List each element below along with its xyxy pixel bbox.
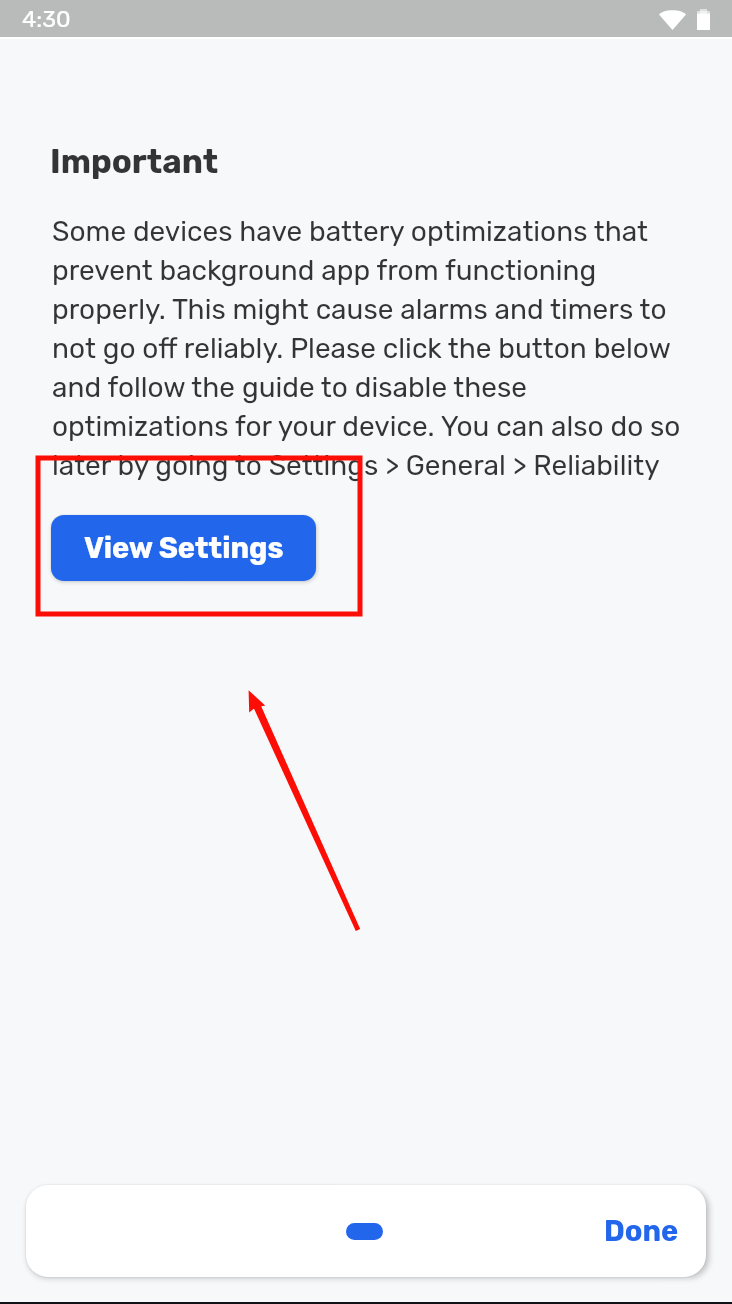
staticText: 4:30: [22, 5, 71, 32]
button[interactable]: View Settings: [51, 515, 316, 581]
staticText: Done: [604, 1214, 679, 1248]
button[interactable]: Done: [596, 1204, 687, 1258]
staticText: Some devices have battery optimizations …: [52, 215, 692, 482]
staticText: Important: [50, 142, 219, 181]
button[interactable]: Page indicator: [346, 1223, 383, 1240]
staticText: View Settings: [84, 531, 284, 565]
